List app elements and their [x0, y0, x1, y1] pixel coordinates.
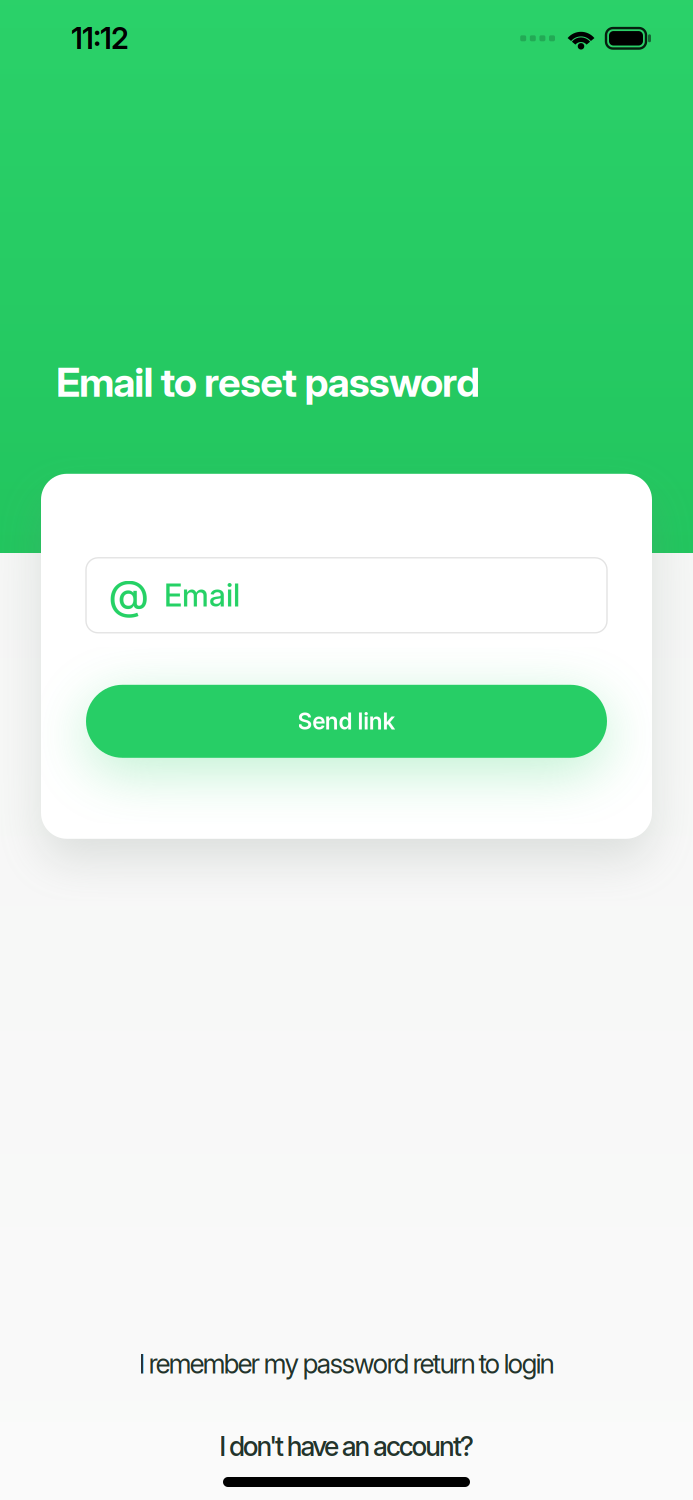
staticText: I don't have an account? [219, 1430, 474, 1462]
button[interactable]: Email [86, 558, 607, 633]
staticText: @ [109, 572, 148, 619]
button[interactable]: I don't have an account? [219, 1430, 474, 1462]
button[interactable]: Send link [86, 685, 607, 758]
button[interactable]: I remember my password return to login [138, 1348, 554, 1380]
staticText: Email [164, 577, 240, 613]
staticText: Email to reset password [56, 359, 480, 406]
staticText: I remember my password return to login [138, 1348, 554, 1380]
staticText: 11:12 [71, 21, 129, 56]
staticText: Send link [298, 708, 395, 735]
